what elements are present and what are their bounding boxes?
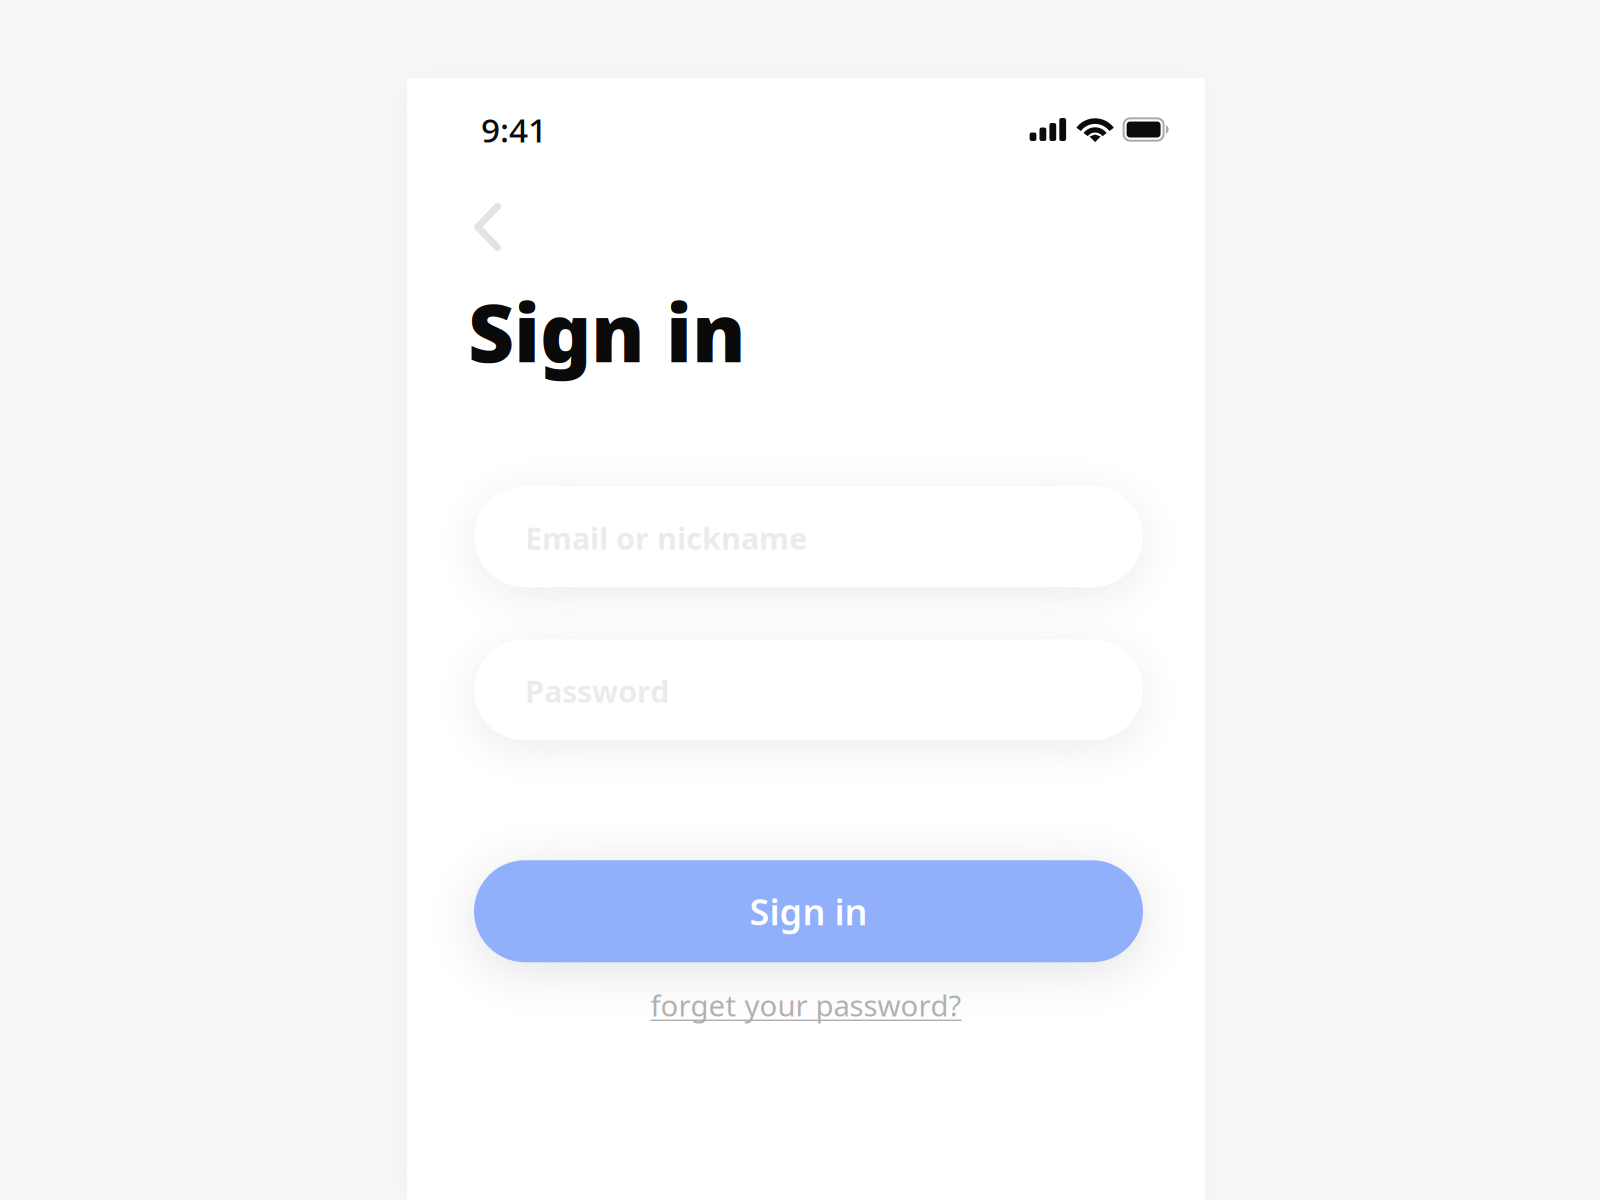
staticText: Sign in — [468, 278, 746, 384]
button[interactable]: forget your password? — [474, 983, 1138, 1027]
button[interactable]: Sign in — [474, 860, 1143, 962]
button[interactable]: Email or nickname — [474, 486, 1143, 587]
button[interactable]: Back — [407, 181, 535, 273]
staticText: Sign in — [749, 887, 867, 935]
staticText: forget your password? — [650, 986, 961, 1025]
staticText: Email or nickname — [525, 517, 807, 558]
staticText: 9:41 — [481, 107, 547, 152]
staticText: Password — [525, 670, 669, 711]
